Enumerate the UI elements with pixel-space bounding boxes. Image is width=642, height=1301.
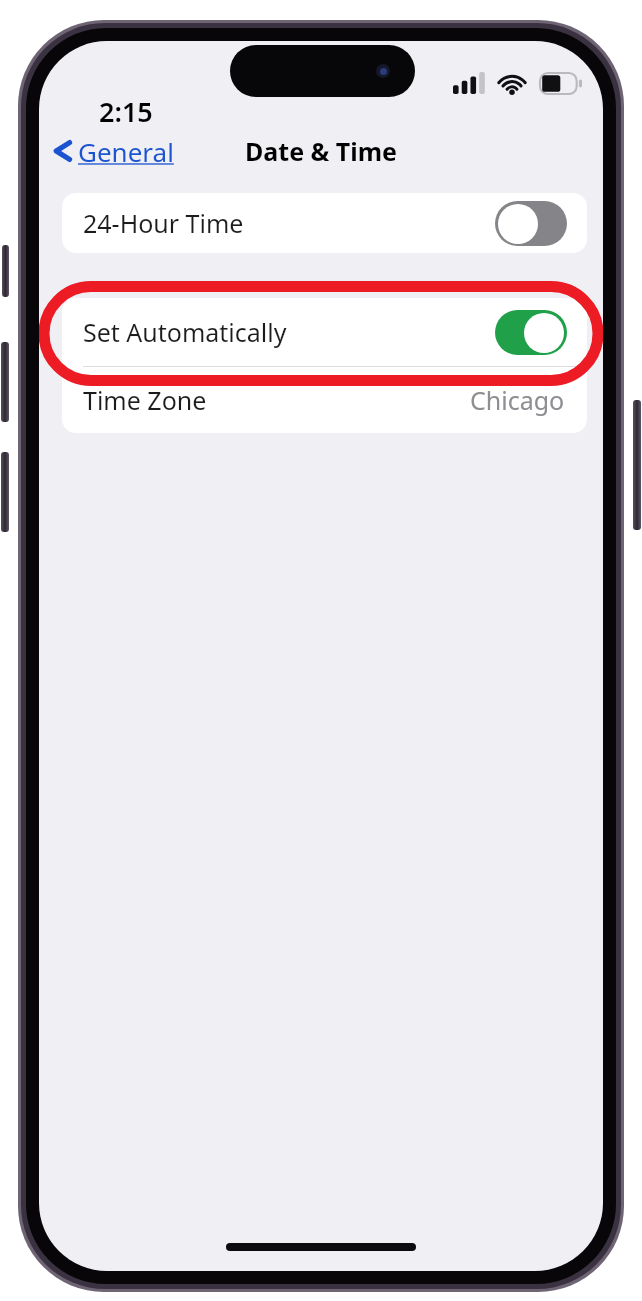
staticText: General <box>78 134 174 169</box>
button[interactable]: Toggle on <box>495 310 567 355</box>
other: Highlight around Set Automatically <box>39 280 603 387</box>
staticText: Time Zone <box>83 383 207 417</box>
staticText: Chicago <box>470 383 565 417</box>
button[interactable]: Toggle off <box>495 201 567 246</box>
button[interactable]: Time Zone <box>62 367 587 433</box>
staticText: 24-Hour Time <box>83 206 244 240</box>
staticText: Date & Time <box>245 134 398 168</box>
button[interactable]: General <box>47 129 180 173</box>
staticText: 2:15 <box>99 93 153 130</box>
button[interactable]: 24-Hour Time <box>62 193 587 253</box>
button[interactable]: Set Automatically <box>62 298 587 366</box>
staticText: Set Automatically <box>83 315 287 349</box>
